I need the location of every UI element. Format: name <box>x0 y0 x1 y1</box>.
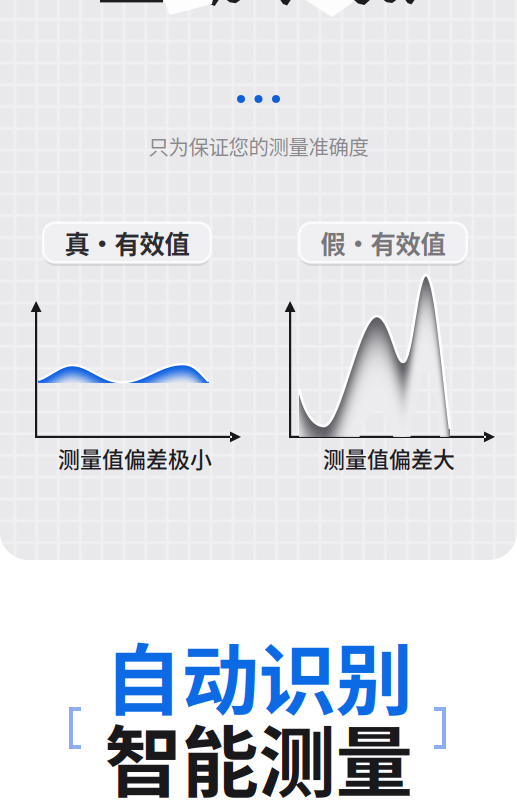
staticText: 测量值偏差大 <box>323 442 455 474</box>
staticText: 真·有效值 <box>64 224 189 261</box>
staticText: 测量值偏差极小 <box>58 442 212 474</box>
staticText: 只为保证您的测量准确度 <box>148 131 368 161</box>
button[interactable]: 假·有效值 <box>298 221 468 263</box>
staticText: 智能测量 <box>104 701 412 800</box>
staticText: 自动识别 <box>104 619 412 731</box>
button[interactable]: 真·有效值 <box>42 221 212 263</box>
staticText: 假·有效值 <box>320 224 445 261</box>
